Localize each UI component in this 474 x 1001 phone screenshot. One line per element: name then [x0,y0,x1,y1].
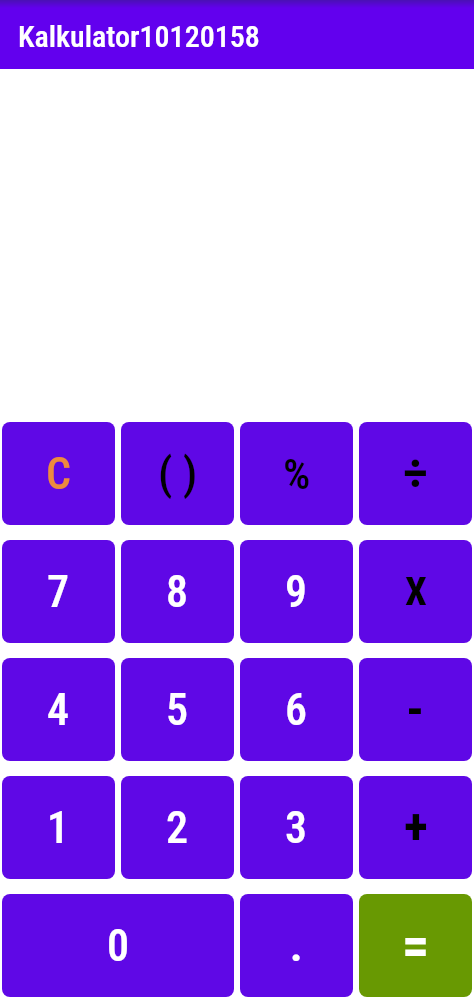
button[interactable]: 1 [2,776,115,879]
button[interactable]: % [240,422,353,525]
button[interactable]: - [359,658,472,761]
button[interactable]: 8 [121,540,234,643]
button[interactable]: = [359,894,472,997]
staticText: C [46,448,72,500]
button[interactable]: ÷ [359,422,472,525]
staticText: 9 [285,566,308,618]
button[interactable]: 7 [2,540,115,643]
staticText: % [283,449,311,499]
button[interactable]: 2 [121,776,234,879]
staticText: 7 [47,566,70,618]
button[interactable]: 6 [240,658,353,761]
staticText: 5 [166,684,189,736]
staticText: . [290,921,303,971]
staticText: 6 [285,684,308,736]
button[interactable]: X [359,540,472,643]
staticText: + [404,798,428,857]
staticText: 4 [47,684,70,736]
button[interactable]: . [240,894,353,997]
button[interactable]: ( ) [121,422,234,525]
staticText: 2 [166,802,189,854]
staticText: ÷ [403,444,428,503]
button[interactable]: 4 [2,658,115,761]
staticText: = [402,914,430,977]
button[interactable]: 5 [121,658,234,761]
staticText: ( ) [158,447,198,500]
button[interactable]: + [359,776,472,879]
staticText: Kalkulator10120158 [18,19,260,54]
staticText: X [405,569,427,615]
button[interactable]: 3 [240,776,353,879]
staticText: 0 [107,920,130,972]
button[interactable]: 9 [240,540,353,643]
staticText: 3 [285,802,308,854]
staticText: 1 [47,802,70,854]
staticText: - [406,680,425,739]
button[interactable]: C [2,422,115,525]
button[interactable]: 0 [2,894,234,997]
staticText: 8 [166,566,189,618]
